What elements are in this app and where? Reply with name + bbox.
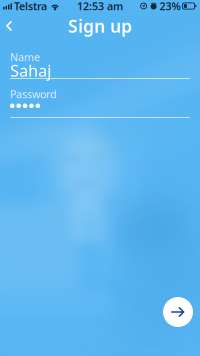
staticText: Name <box>10 50 40 64</box>
staticText: Sign up <box>68 14 132 37</box>
staticText: Password <box>10 87 57 101</box>
staticText: Telstra <box>14 0 47 13</box>
staticText: 12:53 am <box>77 0 123 13</box>
staticText: 23% <box>160 0 181 13</box>
button[interactable]: Continue <box>163 297 193 327</box>
staticText: Sahaj <box>10 60 51 81</box>
button[interactable]: Back <box>0 15 29 37</box>
